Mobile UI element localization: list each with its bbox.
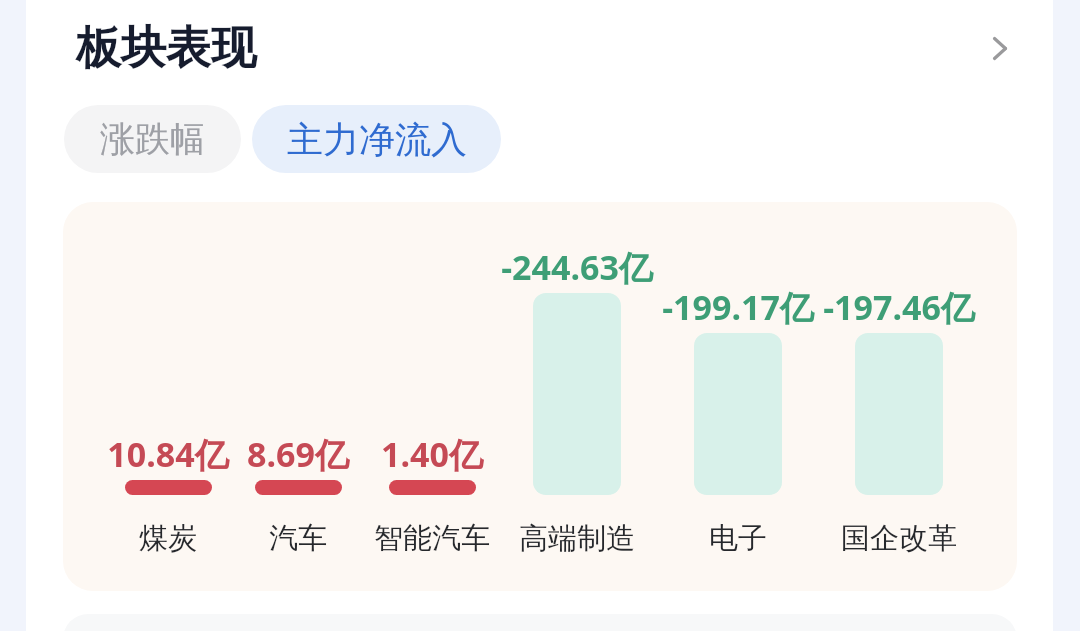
staticText: 10.84亿: [107, 431, 229, 477]
button[interactable]: 电子 -199.17亿: [658, 202, 819, 591]
button[interactable]: 国企改革 -197.46亿: [819, 202, 1017, 591]
staticText: 板块表现: [76, 20, 256, 77]
staticText: 高端制造: [519, 520, 635, 557]
staticText: 1.40亿: [381, 431, 483, 477]
staticText: -244.63亿: [501, 244, 653, 290]
button[interactable]: 智能汽车 1.40亿: [365, 202, 505, 591]
button[interactable]: 高端制造 -244.63亿: [505, 202, 658, 591]
button[interactable]: 汽车 8.69亿: [233, 202, 365, 591]
button[interactable]: 煤炭 10.84亿: [63, 202, 233, 591]
staticText: 国企改革: [841, 520, 957, 557]
staticText: 涨跌幅: [100, 117, 205, 161]
staticText: -199.17亿: [662, 284, 814, 330]
staticText: -197.46亿: [823, 284, 975, 330]
staticText: 煤炭: [139, 520, 197, 557]
button[interactable]: 主力净流入: [252, 105, 501, 173]
staticText: 电子: [709, 520, 767, 557]
staticText: 汽车: [269, 520, 327, 557]
button[interactable]: 板块表现: [64, 6, 276, 82]
button[interactable]: More sectors: [968, 16, 1030, 78]
button[interactable]: 涨跌幅: [64, 105, 241, 173]
staticText: 智能汽车: [374, 520, 490, 557]
staticText: 8.69亿: [247, 431, 349, 477]
staticText: 主力净流入: [287, 117, 467, 162]
